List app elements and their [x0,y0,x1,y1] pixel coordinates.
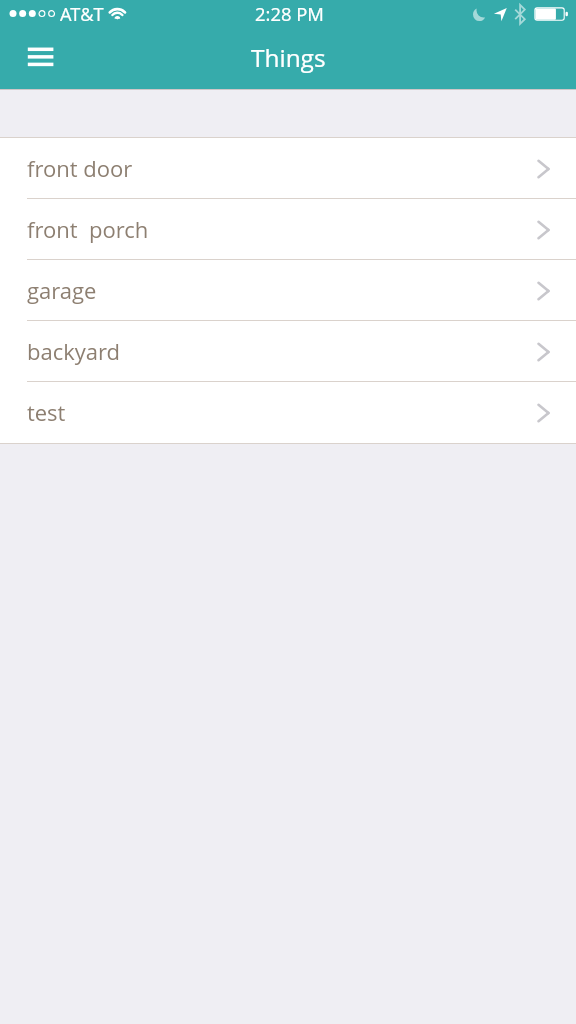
staticText: garage [27,275,97,305]
staticText: backyard [27,336,121,366]
button[interactable]: Menu [6,34,74,80]
staticText: 2:28 PM [255,1,324,26]
staticText: AT&T [60,2,104,27]
staticText: test [27,397,66,427]
staticText: Things [251,41,326,74]
button[interactable]: front door [0,138,576,199]
button[interactable]: test [0,382,576,443]
staticText: front door [27,153,133,183]
button[interactable]: backyard [0,321,576,382]
button[interactable]: garage [0,260,576,321]
staticText: front porch [27,214,149,244]
button[interactable]: front porch [0,199,576,260]
